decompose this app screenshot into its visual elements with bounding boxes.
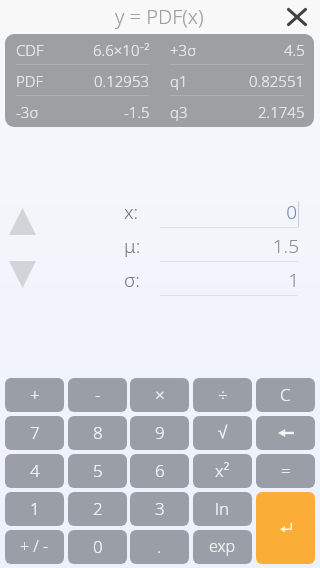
staticText: x² [215,459,230,482]
staticText: ln [215,497,230,520]
staticText: y = PDF(x) [115,3,204,30]
button[interactable]: exp [193,530,252,564]
button[interactable]: Increment [4,203,40,239]
button[interactable]: Close [281,1,313,33]
button[interactable]: PDF [5,65,159,96]
button[interactable]: 1 [5,492,64,526]
staticText: 1.5 [272,233,299,259]
button[interactable]: ln [193,492,252,526]
button[interactable]: Enter [256,492,315,564]
staticText: 2.1745 [258,102,305,122]
staticText: 9 [155,421,165,444]
button[interactable]: x² [193,454,252,488]
staticText: 0 [93,535,103,558]
button[interactable]: . [130,530,189,564]
staticText: × [155,383,165,406]
staticText: + [30,383,40,406]
staticText: = [281,459,291,482]
button[interactable]: q1 [159,65,314,96]
button[interactable]: 6 [130,454,189,488]
staticText: 1 [288,267,299,293]
staticText: 3 [155,497,165,520]
staticText: 4.5 [284,40,305,60]
staticText: 0.12953 [94,71,150,91]
staticText: 0 [286,199,297,225]
button[interactable]: + / - [5,530,64,564]
button[interactable]: +3σ [159,34,314,65]
button[interactable]: × [130,378,189,412]
button[interactable]: 5 [68,454,127,488]
staticText: 2 [93,497,103,520]
staticText: 8 [93,421,103,444]
button[interactable]: CDF [5,34,159,65]
staticText: 5 [93,459,103,482]
staticText: 6 [155,459,165,482]
staticText: - [95,383,101,406]
staticText: -1.5 [124,102,150,122]
staticText: PDF [16,71,44,91]
staticText: 7 [30,421,40,444]
staticText: σ: [124,267,140,293]
button[interactable]: σ: [0,263,320,297]
button[interactable]: 3 [130,492,189,526]
staticText: q1 [170,71,188,91]
button[interactable]: ÷ [193,378,252,412]
staticText: 1 [30,497,40,520]
staticText: √ [218,423,228,442]
button[interactable]: + [5,378,64,412]
staticText: -3σ [16,102,39,122]
button[interactable]: = [256,454,315,488]
button[interactable]: 9 [130,416,189,450]
staticText: q3 [170,102,188,122]
staticText: μ: [124,233,141,259]
button[interactable]: 0 [68,530,127,564]
staticText: . [157,535,162,558]
staticText: C [280,383,291,406]
staticText: ÷ [218,383,228,406]
staticText: CDF [16,40,44,60]
button[interactable]: Backspace [256,416,315,450]
button[interactable]: Decrement [4,256,40,292]
staticText: exp [209,535,236,557]
staticText: + / - [20,535,49,557]
staticText: 0.82551 [249,71,305,91]
button[interactable]: 7 [5,416,64,450]
staticText: 4 [30,459,40,482]
button[interactable]: q3 [159,96,314,127]
staticText: x: [124,199,139,225]
button[interactable]: μ: [0,229,320,263]
button[interactable]: 8 [68,416,127,450]
button[interactable]: x: [0,195,320,229]
staticText: +3σ [170,40,197,60]
button[interactable]: - [68,378,127,412]
button[interactable]: √ [193,416,252,450]
button[interactable]: 4 [5,454,64,488]
button[interactable]: 2 [68,492,127,526]
button[interactable]: -3σ [5,96,159,127]
button[interactable]: C [256,378,315,412]
staticText: 6.6×10⁻² [93,40,150,60]
